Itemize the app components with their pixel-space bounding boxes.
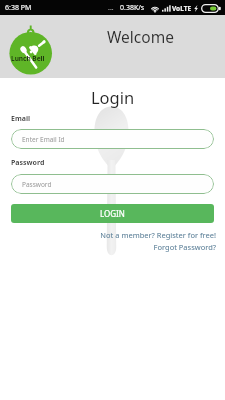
staticText: Lunch Bell <box>11 54 45 63</box>
staticText: Email <box>11 114 31 124</box>
staticText: LOGIN <box>100 208 125 219</box>
staticText: 6:38 PM <box>5 3 32 13</box>
button[interactable]: Forgot Password? <box>13 242 216 252</box>
staticText: Login <box>0 86 225 108</box>
staticText: 0.38K/s <box>120 3 145 13</box>
staticText: Welcome <box>107 26 174 47</box>
button[interactable]: LOGIN <box>11 204 214 223</box>
staticText: Password <box>11 158 45 168</box>
staticText: Enter Email Id <box>22 135 65 144</box>
button[interactable]: Not a member? Register for free! <box>13 230 216 240</box>
staticText: ... <box>108 3 114 13</box>
staticText: VoLTE <box>172 4 192 13</box>
button[interactable]: Password <box>11 174 214 194</box>
button[interactable]: Lunch Bell logo <box>6 24 56 78</box>
staticText: Password <box>22 180 52 189</box>
button[interactable]: Enter Email Id <box>11 129 214 149</box>
